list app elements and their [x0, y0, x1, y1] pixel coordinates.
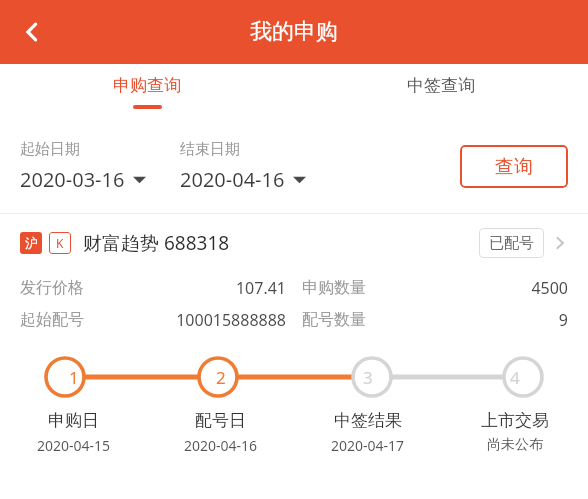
- staticText: 发行价格: [20, 278, 84, 298]
- staticText: 1: [69, 366, 79, 389]
- staticText: 2020-04-17: [331, 436, 405, 455]
- button[interactable]: 起始日期: [20, 140, 146, 193]
- staticText: 4500: [366, 277, 568, 299]
- staticText: 2020-04-16: [184, 436, 258, 455]
- staticText: 申购日: [48, 410, 99, 431]
- button[interactable]: 查询: [460, 145, 568, 188]
- staticText: 配号日: [195, 410, 246, 431]
- staticText: 尚未公布: [487, 436, 543, 454]
- staticText: 沪: [25, 235, 38, 251]
- staticText: 107.41: [84, 277, 286, 299]
- staticText: 2020-03-16: [20, 166, 125, 193]
- staticText: 100015888888: [84, 309, 286, 331]
- staticText: 财富趋势 688318: [83, 230, 230, 256]
- staticText: 申购查询: [113, 75, 181, 96]
- staticText: 起始日期: [20, 140, 80, 159]
- staticText: 申购数量: [302, 278, 366, 298]
- staticText: 3: [363, 366, 373, 389]
- staticText: 结束日期: [180, 140, 240, 159]
- staticText: 查询: [495, 155, 533, 179]
- staticText: 中签查询: [407, 75, 475, 96]
- staticText: 2020-04-15: [37, 436, 111, 455]
- staticText: 配号数量: [302, 310, 366, 330]
- staticText: 2: [216, 366, 226, 389]
- button[interactable]: Back: [6, 6, 58, 58]
- staticText: 2020-04-16: [180, 166, 285, 193]
- staticText: 上市交易: [481, 410, 549, 431]
- staticText: 已配号: [489, 234, 534, 253]
- staticText: 9: [366, 309, 568, 331]
- staticText: 中签结果: [334, 410, 402, 431]
- button[interactable]: 沪: [0, 214, 588, 455]
- button[interactable]: 结束日期: [180, 140, 306, 193]
- staticText: 4: [510, 366, 520, 389]
- button[interactable]: 申购查询: [0, 64, 294, 120]
- staticText: 我的申购: [250, 18, 338, 46]
- staticText: K: [56, 235, 64, 251]
- button[interactable]: 中签查询: [294, 64, 588, 120]
- staticText: 起始配号: [20, 310, 84, 330]
